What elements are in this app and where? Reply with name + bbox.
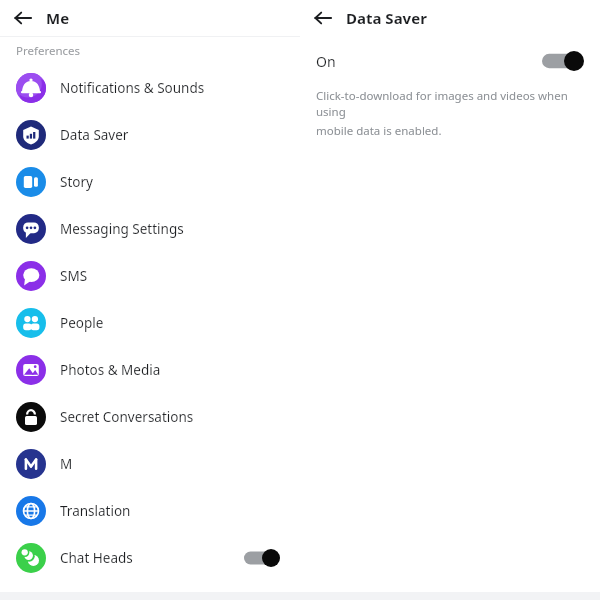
- button[interactable]: Data Saver: [0, 111, 300, 158]
- staticText: Data Saver: [346, 8, 427, 28]
- staticText: Photos & Media: [60, 361, 161, 379]
- staticText: Data Saver: [60, 126, 129, 144]
- staticText: Notifications & Sounds: [60, 79, 205, 97]
- staticText: SMS: [60, 267, 88, 285]
- staticText: Me: [46, 8, 70, 28]
- button[interactable]: Back: [306, 1, 340, 35]
- button[interactable]: Messaging Settings: [0, 205, 300, 252]
- staticText: mobile data is enabled.: [316, 123, 442, 139]
- staticText: Story: [60, 173, 93, 191]
- staticText: Chat Heads: [60, 549, 133, 567]
- button[interactable]: On: [300, 44, 600, 78]
- button[interactable]: Notifications & Sounds: [0, 64, 300, 111]
- staticText: People: [60, 314, 104, 332]
- staticText: Translation: [60, 502, 131, 520]
- button[interactable]: SMS: [0, 252, 300, 299]
- staticText: Messaging Settings: [60, 220, 184, 238]
- staticText: Secret Conversations: [60, 408, 194, 426]
- button[interactable]: Story: [0, 158, 300, 205]
- staticText: On: [316, 52, 336, 71]
- button[interactable]: Photos & Media: [0, 346, 300, 393]
- staticText: M: [60, 455, 73, 473]
- button[interactable]: Toggle: [244, 549, 280, 567]
- button[interactable]: Toggle: [542, 51, 584, 71]
- button[interactable]: Translation: [0, 487, 300, 534]
- button[interactable]: M: [0, 440, 300, 487]
- button[interactable]: Back: [6, 1, 40, 35]
- button[interactable]: Secret Conversations: [0, 393, 300, 440]
- staticText: Click-to-download for images and videos …: [316, 88, 576, 120]
- button[interactable]: Chat Heads: [0, 534, 300, 581]
- staticText: Preferences: [16, 43, 81, 59]
- button[interactable]: People: [0, 299, 300, 346]
